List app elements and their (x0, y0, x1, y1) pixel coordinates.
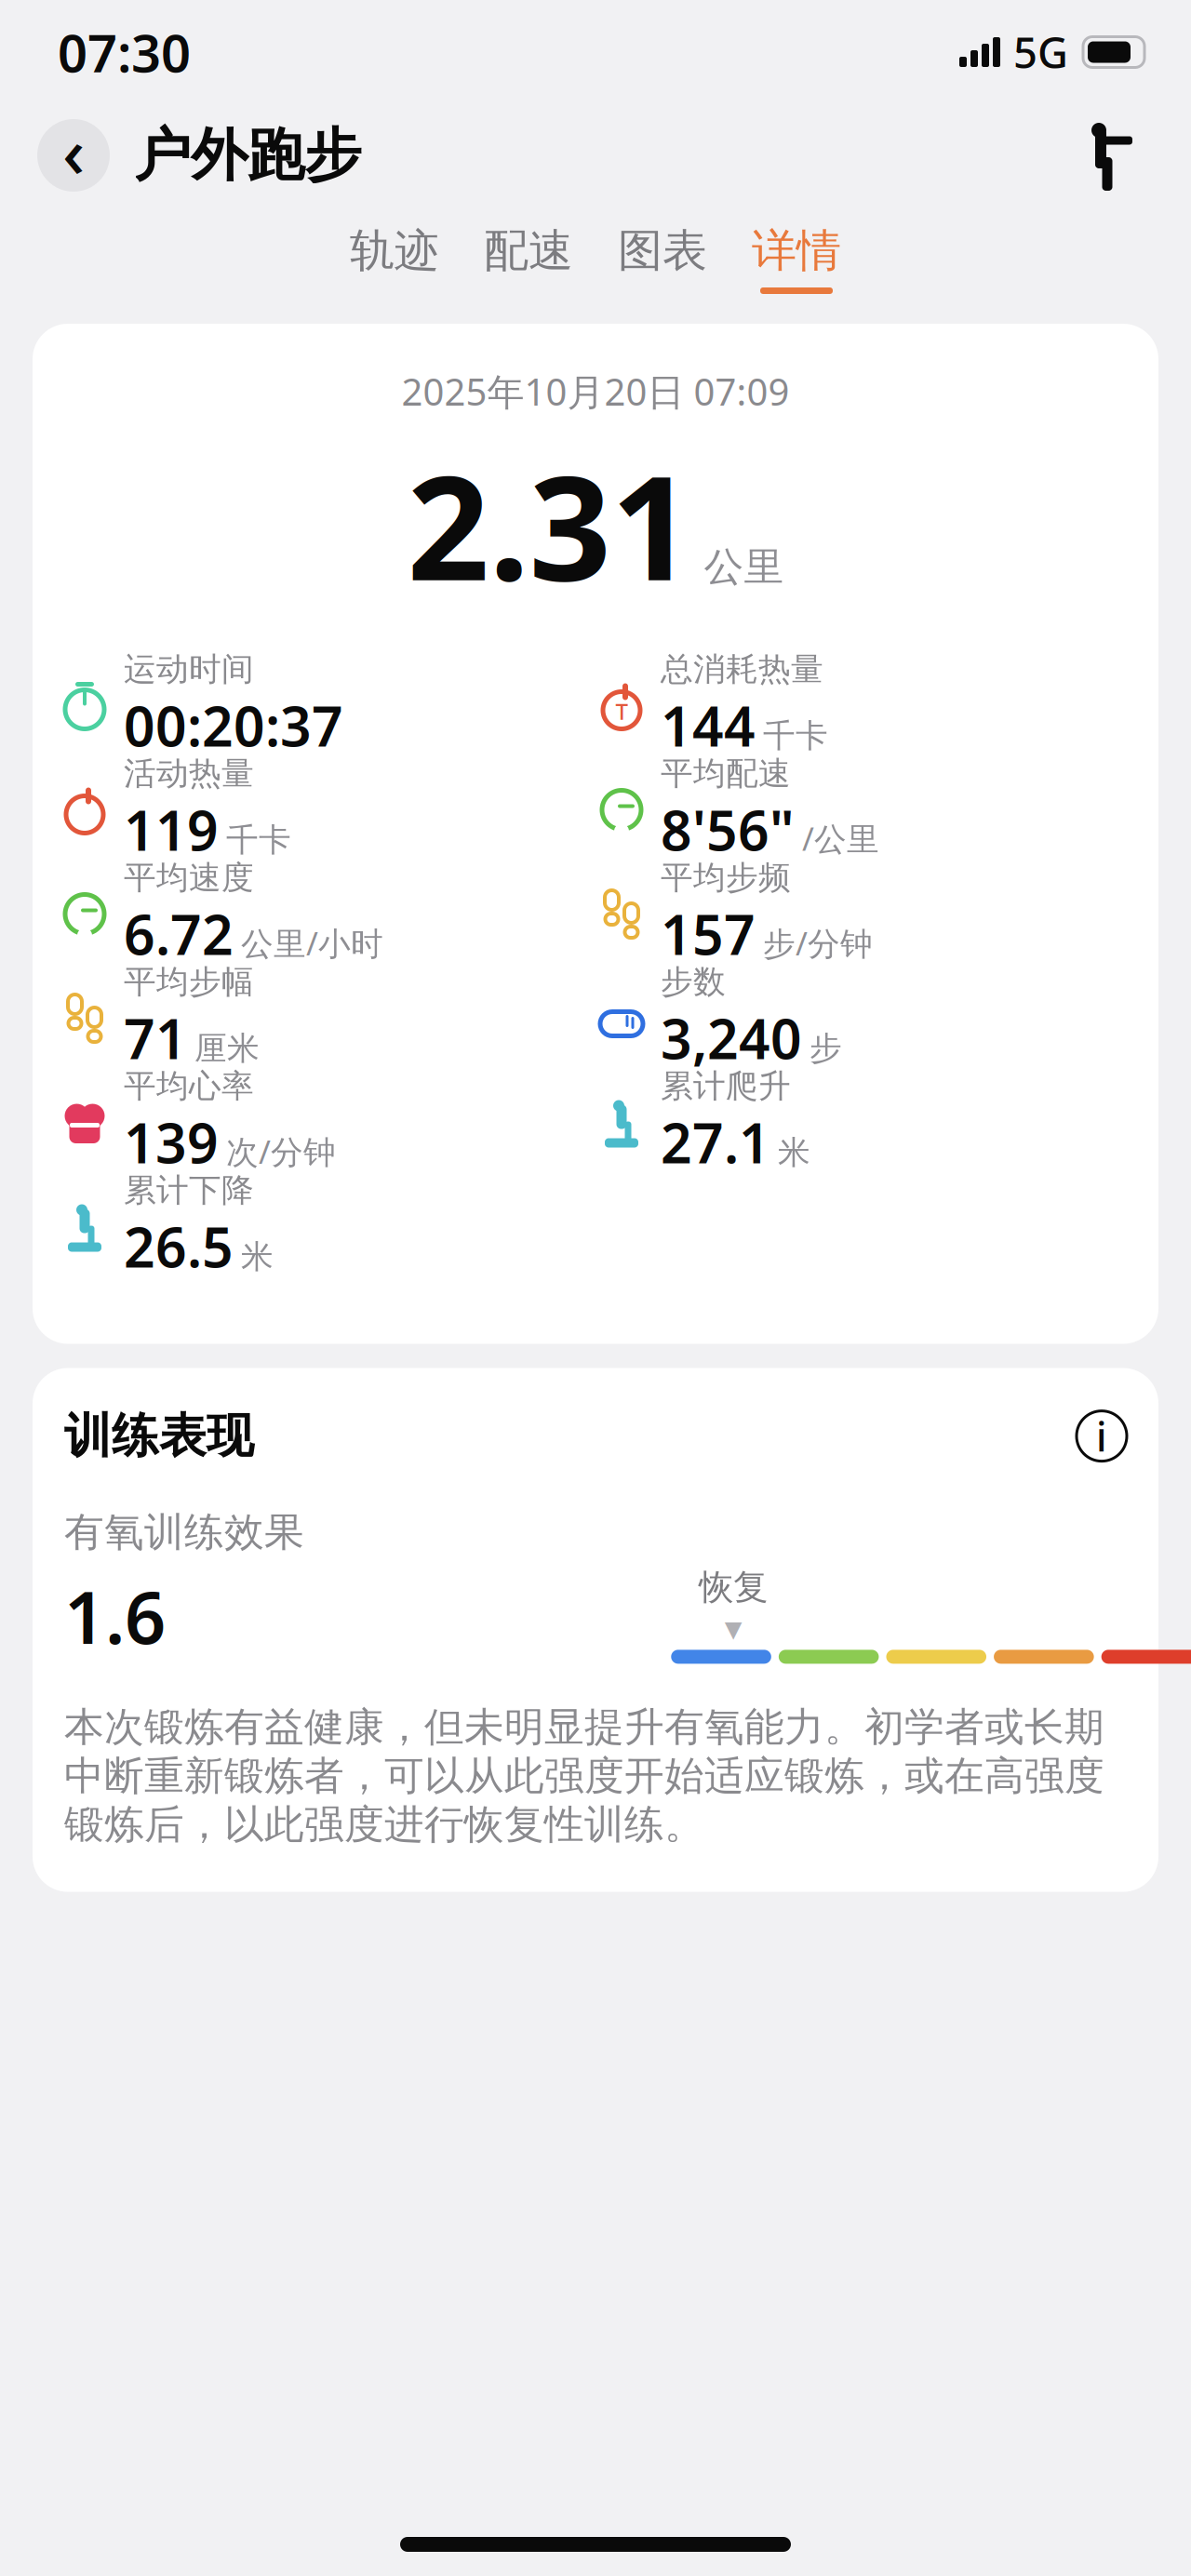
staticText: 8'56" (661, 793, 795, 866)
staticText: 厘米 (194, 1029, 260, 1068)
staticText: 2.31 (407, 429, 693, 620)
button[interactable]: 图表 (595, 223, 729, 294)
staticText: 平均配速 (661, 754, 791, 793)
staticText: i (1096, 1410, 1107, 1462)
staticText: 00:20:37 (124, 689, 343, 762)
staticText: T (616, 696, 628, 726)
staticText: 次/分钟 (226, 1130, 336, 1173)
staticText: 07:30 (58, 17, 191, 87)
button[interactable]: 详情 (729, 223, 863, 294)
staticText: 2025年10月20日 07:09 (401, 367, 790, 416)
staticText: 户外跑步 (134, 120, 361, 190)
staticText: 3,240 (661, 1002, 802, 1074)
staticText: 轨迹 (350, 223, 439, 278)
staticText: 平均步幅 (124, 962, 254, 1002)
staticText: 累计爬升 (661, 1066, 791, 1106)
staticText: 千卡 (763, 716, 828, 756)
staticText: 5G (1013, 24, 1068, 80)
staticText: 6.72 (124, 898, 234, 970)
staticText: 累计下降 (124, 1171, 254, 1210)
staticText: 步 (810, 1029, 842, 1068)
button[interactable]: 配速 (462, 223, 595, 294)
button[interactable]: 轨迹 (328, 223, 462, 294)
staticText: 144 (661, 689, 756, 762)
staticText: 有氧训练效果 (64, 1508, 304, 1556)
staticText: 26.5 (124, 1210, 234, 1283)
staticText: 平均心率 (124, 1066, 254, 1106)
staticText: 总消耗热量 (661, 650, 823, 689)
staticText: 米 (241, 1237, 274, 1277)
staticText: 157 (661, 898, 756, 970)
button[interactable]: 运动类型 (1066, 113, 1144, 197)
staticText: 配速 (484, 223, 573, 278)
staticText: 活动热量 (124, 754, 254, 793)
staticText: 运动时间 (124, 650, 254, 689)
staticText: 本次锻炼有益健康，但未明显提升有氧能力。初学者或长期中断重新锻炼者，可以从此强度… (64, 1703, 1104, 1849)
staticText: 平均步频 (661, 858, 791, 898)
staticText: 139 (124, 1106, 219, 1178)
staticText: ‹ (62, 105, 85, 197)
staticText: 平均速度 (124, 858, 254, 898)
button[interactable]: 返回 (37, 105, 110, 206)
staticText: ▾ (725, 1608, 742, 1648)
staticText: 步数 (661, 962, 726, 1002)
staticText: /公里 (802, 817, 879, 860)
staticText: 千卡 (226, 820, 291, 860)
staticText: 27.1 (661, 1106, 770, 1178)
staticText: 米 (778, 1133, 810, 1172)
staticText: 公里 (704, 543, 784, 591)
staticText: 公里/小时 (241, 922, 383, 964)
staticText: 119 (124, 793, 219, 866)
staticText: 恢复 (699, 1566, 768, 1608)
staticText: 71 (124, 1002, 187, 1074)
staticText: 1.6 (64, 1568, 166, 1664)
staticText: 详情 (752, 223, 841, 278)
staticText: 步/分钟 (763, 922, 873, 964)
button[interactable]: 说明 (1077, 1410, 1127, 1462)
staticText: 图表 (618, 223, 707, 278)
staticText: 训练表现 (64, 1407, 254, 1465)
